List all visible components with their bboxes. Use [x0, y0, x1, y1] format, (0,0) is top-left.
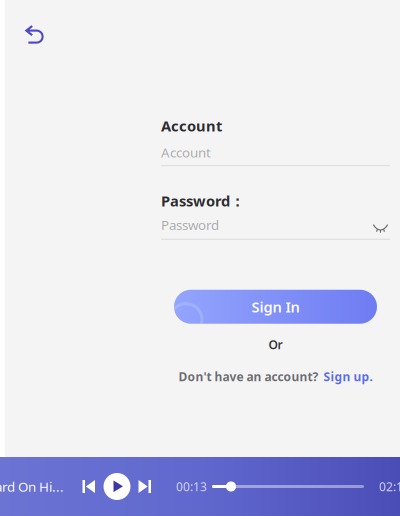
button[interactable]: Sign up. [323, 369, 372, 385]
staticText: Password： [161, 191, 245, 211]
button[interactable]: Play [101, 470, 133, 502]
button[interactable]: Sign In [174, 290, 377, 324]
staticText: Account [161, 143, 211, 161]
staticText: Sign In [251, 297, 299, 316]
button[interactable]: Next track [133, 472, 157, 500]
staticText: Or [268, 337, 282, 353]
staticText: Sign up. [323, 369, 372, 385]
button[interactable]: Back [18, 19, 50, 51]
staticText: 00:13 [176, 478, 207, 494]
staticText: ave Heard On Hi... [0, 478, 64, 495]
staticText: 02:19 [379, 478, 400, 494]
staticText: Password [161, 216, 219, 234]
button[interactable]: Previous track [77, 472, 101, 500]
button[interactable]: Show password [370, 216, 390, 233]
staticText: Account [161, 116, 222, 135]
staticText: Don't have an account? [178, 369, 318, 385]
